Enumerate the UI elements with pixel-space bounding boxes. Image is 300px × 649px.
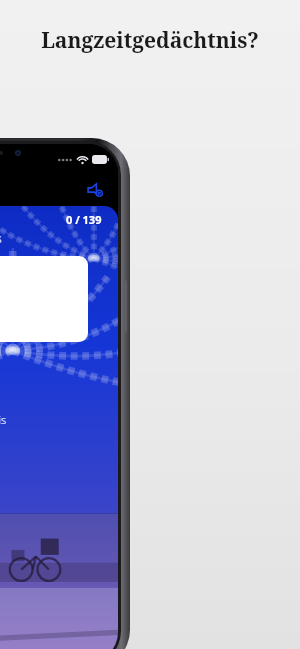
staticText: ins Langzeitgedächtnis — [0, 412, 7, 427]
button[interactable]: Ton aus — [85, 179, 107, 201]
staticText: 0 / 139 — [66, 212, 102, 227]
staticText: Langzeitgedächtnis? — [41, 26, 259, 55]
staticText: Langzeitgedächtnis — [0, 230, 2, 246]
button[interactable]: Mehr — [0, 256, 88, 342]
button[interactable]: Bildschirm 01a — [0, 174, 118, 206]
